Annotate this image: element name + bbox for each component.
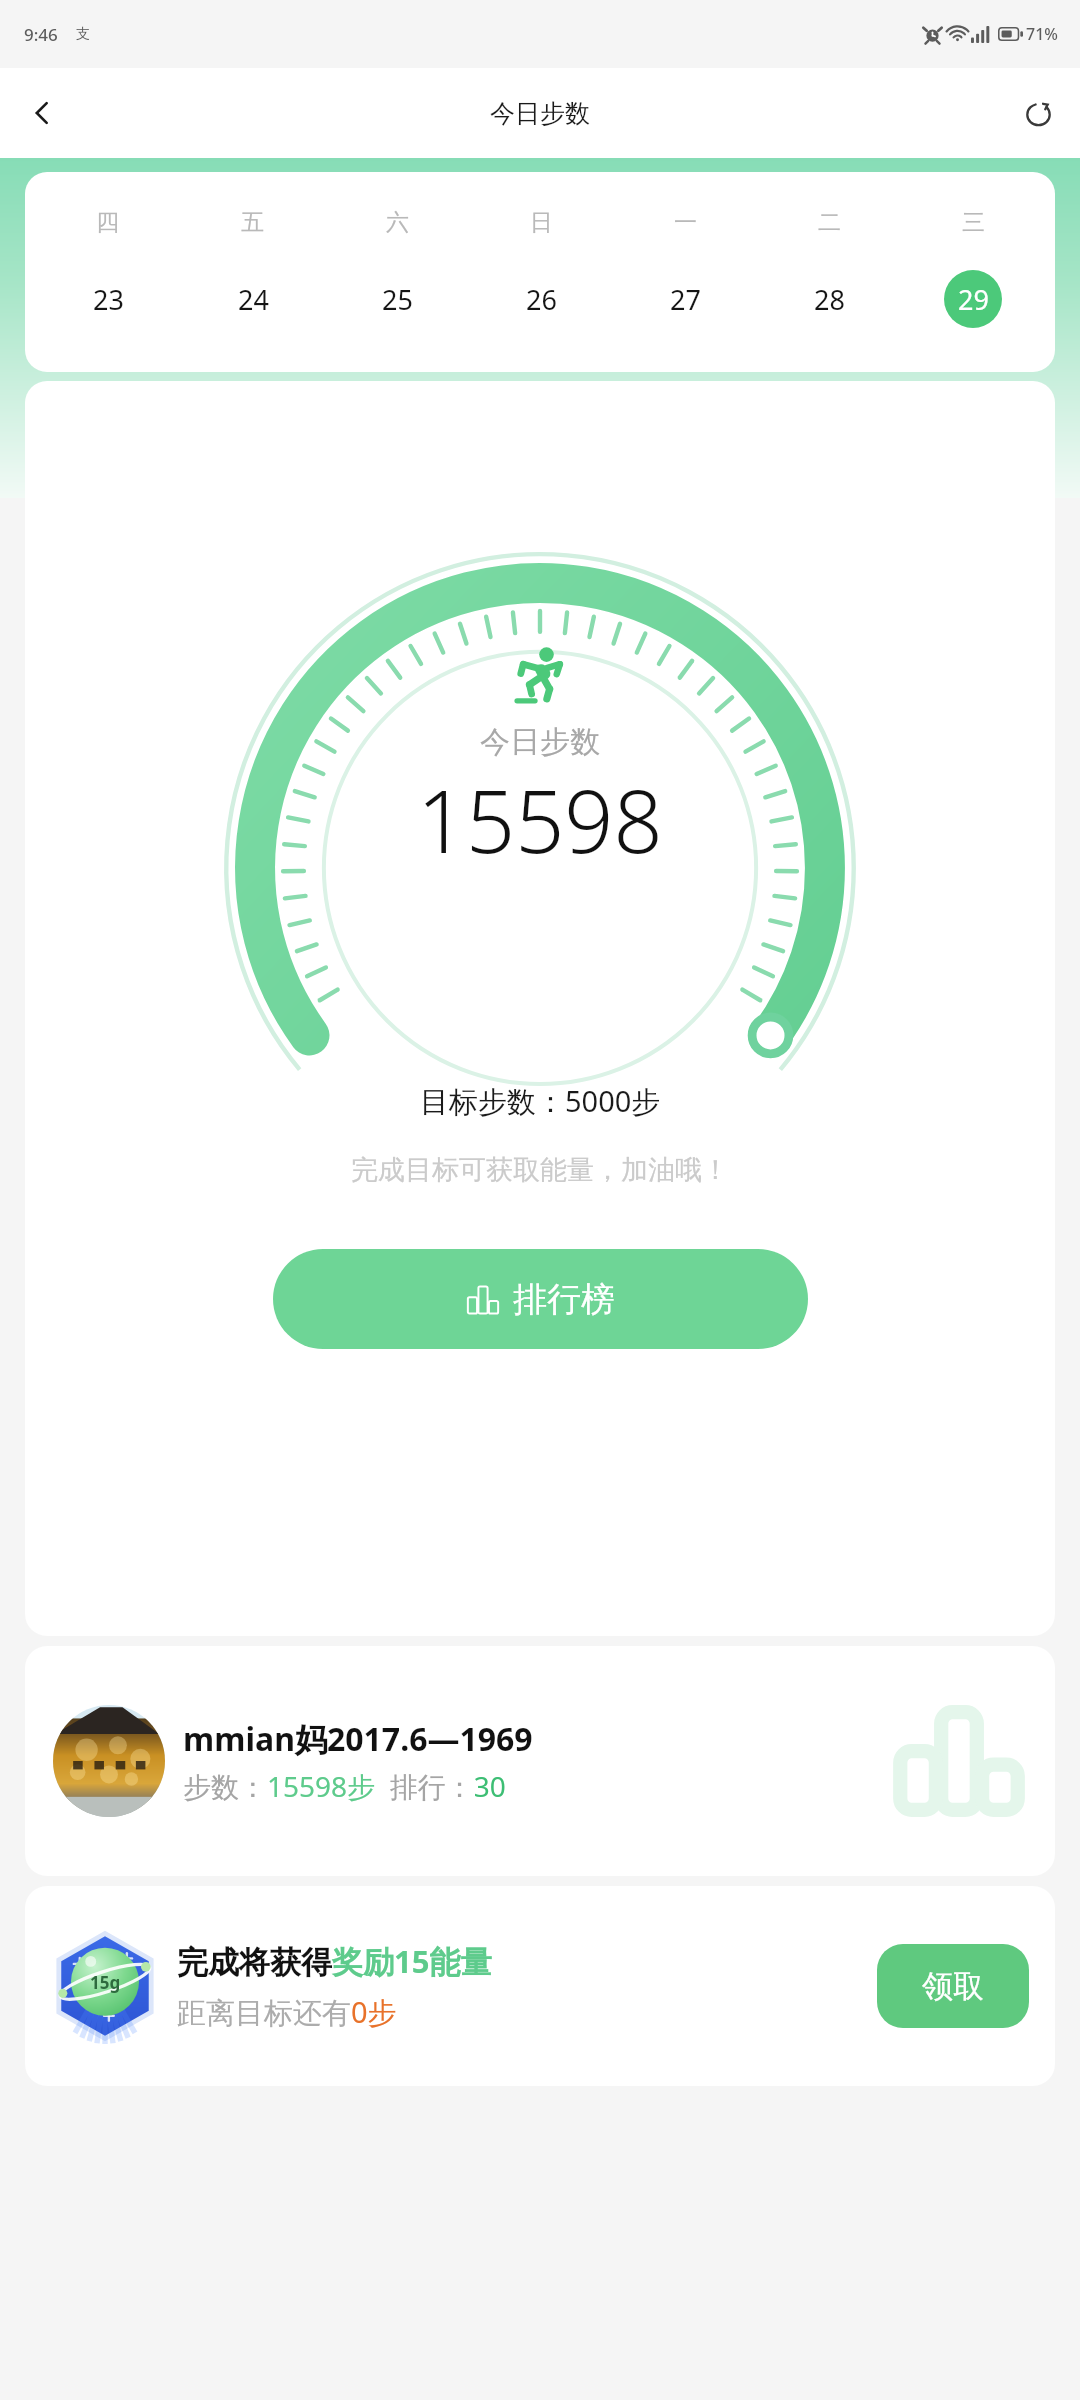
staticText: mmian妈2017.6—1969 <box>183 1717 533 1761</box>
staticText: 五 <box>241 208 264 237</box>
staticText: 71% <box>1026 23 1058 45</box>
button[interactable]: Share <box>1010 85 1066 141</box>
staticText: 六 <box>386 208 409 237</box>
staticText: 15598 <box>417 761 663 878</box>
button[interactable]: 29 <box>944 270 1002 328</box>
staticText: 支 <box>76 25 90 43</box>
staticText: 今日步数 <box>490 98 590 129</box>
staticText: 日 <box>530 208 553 237</box>
button[interactable]: 28 <box>800 270 858 328</box>
staticText: 15g <box>90 1971 121 1994</box>
staticText: 领取 <box>922 1967 984 2006</box>
staticText: 三 <box>962 208 985 237</box>
button[interactable]: 领取 <box>877 1944 1029 2028</box>
staticText: 目标步数：5000步 <box>420 1081 661 1121</box>
staticText: 28 <box>814 281 845 318</box>
staticText: 27 <box>670 281 701 318</box>
staticText: 29 <box>958 281 989 318</box>
button[interactable]: 24 <box>224 270 282 328</box>
button[interactable]: 25 <box>368 270 426 328</box>
button[interactable]: 27 <box>656 270 714 328</box>
staticText: 9:46 <box>24 23 58 46</box>
staticText: 24 <box>238 281 269 318</box>
staticText: 今日步数 <box>480 723 600 761</box>
staticText: 四 <box>96 208 119 237</box>
staticText: 二 <box>818 208 841 237</box>
staticText: 23 <box>93 281 124 318</box>
button[interactable]: Back <box>14 85 70 141</box>
staticText: 排行榜 <box>513 1278 615 1321</box>
staticText: 完成目标可获取能量，加油哦！ <box>351 1153 729 1187</box>
staticText: 一 <box>674 208 697 237</box>
button[interactable]: 四 <box>25 172 1055 372</box>
button[interactable]: 26 <box>512 270 570 328</box>
staticText: 步数：15598步 排行：30 <box>183 1767 506 1805</box>
staticText: 25 <box>382 281 413 318</box>
staticText: 26 <box>526 281 557 318</box>
staticText: 完成将获得奖励15能量 <box>177 1940 492 1982</box>
button[interactable]: 排行榜 <box>273 1249 808 1349</box>
staticText: 距离目标还有0步 <box>177 1992 397 2032</box>
button[interactable]: 23 <box>79 270 137 328</box>
button[interactable]: mmian妈2017.6—1969 <box>25 1646 1055 1876</box>
